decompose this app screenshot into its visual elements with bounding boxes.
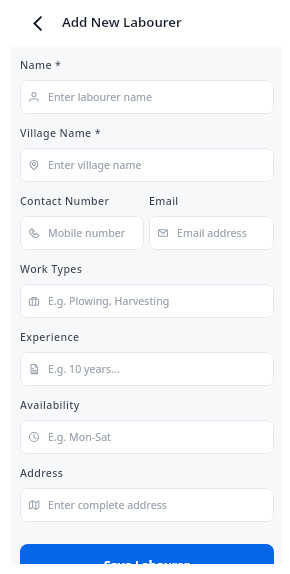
staticText: Email	[149, 194, 179, 208]
staticText: Village Name *	[20, 126, 101, 140]
staticText: Name *	[20, 58, 62, 72]
button[interactable]: Mobile number	[20, 216, 144, 250]
staticText: Mobile number	[48, 226, 126, 240]
button[interactable]: Email address	[149, 216, 274, 250]
staticText: Experience	[20, 330, 80, 344]
staticText: Save Labourer	[104, 557, 190, 564]
staticText: Enter village name	[48, 158, 142, 172]
staticText: E.g. Mon-Sat	[48, 430, 111, 444]
button[interactable]: Back	[26, 12, 48, 34]
button[interactable]: Enter labourer name	[20, 80, 274, 114]
button[interactable]: Save Labourer	[20, 544, 274, 564]
button[interactable]: E.g. 10 years...	[20, 352, 274, 386]
staticText: Address	[20, 466, 64, 480]
button[interactable]: Enter complete address	[20, 488, 274, 522]
button[interactable]: E.g. Plowing, Harvesting	[20, 284, 274, 318]
staticText: Enter labourer name	[48, 90, 153, 104]
staticText: Availability	[20, 398, 80, 412]
button[interactable]: E.g. Mon-Sat	[20, 420, 274, 454]
staticText: E.g. Plowing, Harvesting	[48, 294, 170, 308]
staticText: E.g. 10 years...	[48, 362, 120, 376]
button[interactable]: Enter village name	[20, 148, 274, 182]
staticText: Work Types	[20, 262, 83, 276]
staticText: Email address	[177, 226, 247, 240]
staticText: Enter complete address	[48, 498, 167, 512]
staticText: Contact Number	[20, 194, 110, 208]
staticText: Add New Labourer	[62, 13, 182, 31]
